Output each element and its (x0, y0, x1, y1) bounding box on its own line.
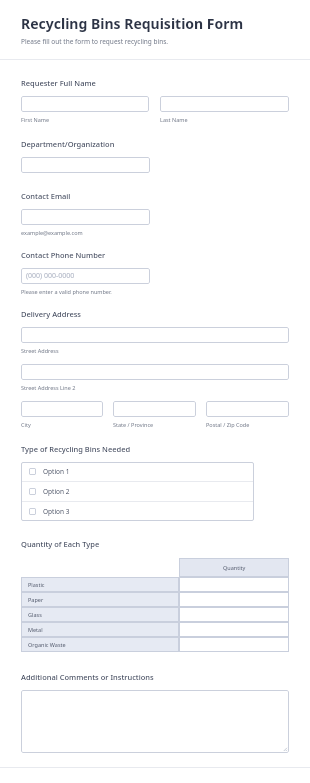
staticText: Plastic (28, 581, 45, 588)
staticText: Delivery Address (21, 309, 82, 319)
button[interactable] (21, 401, 103, 417)
staticText: City (21, 421, 31, 428)
staticText: Requester Full Name (21, 78, 96, 88)
staticText: Organic Waste (28, 641, 66, 648)
staticText: State / Province (113, 421, 154, 428)
staticText: Glass (28, 611, 42, 618)
staticText: Option 3 (43, 507, 70, 516)
button[interactable] (21, 690, 289, 753)
staticText: Type of Recycling Bins Needed (21, 444, 131, 454)
button[interactable] (21, 209, 150, 225)
button[interactable] (113, 401, 196, 417)
staticText: Recycling Bins Requisition Form (21, 14, 244, 33)
button[interactable]: Option 1 (21, 462, 254, 481)
staticText: Quantity of Each Type (21, 539, 100, 549)
staticText: Please fill out the form to request recy… (21, 37, 169, 46)
button[interactable] (179, 622, 289, 637)
staticText: Option 2 (43, 487, 70, 496)
button[interactable] (179, 592, 289, 607)
button[interactable] (21, 364, 289, 380)
staticText: Postal / Zip Code (206, 421, 250, 428)
staticText: Contact Phone Number (21, 250, 106, 260)
button[interactable]: Option 2 (21, 482, 254, 501)
staticText: Department/Organization (21, 139, 115, 149)
staticText: (000) 000-0000 (26, 271, 75, 281)
button[interactable] (179, 577, 289, 592)
button[interactable] (206, 401, 289, 417)
staticText: Metal (28, 626, 43, 633)
staticText: example@example.com (21, 229, 83, 236)
staticText: Paper (28, 596, 44, 603)
staticText: First Name (21, 116, 50, 123)
button[interactable] (21, 327, 289, 343)
button[interactable] (21, 96, 149, 112)
button[interactable] (21, 157, 150, 173)
button[interactable]: Option 3 (21, 502, 254, 521)
button[interactable]: (000) 000-0000 (21, 268, 150, 284)
staticText: Please enter a valid phone number. (21, 288, 112, 295)
staticText: Option 1 (43, 467, 70, 476)
staticText: Quantity (223, 564, 246, 571)
staticText: Additional Comments or Instructions (21, 672, 154, 682)
staticText: Last Name (160, 116, 188, 123)
staticText: Street Address Line 2 (21, 384, 76, 391)
staticText: Street Address (21, 347, 59, 354)
button[interactable] (160, 96, 289, 112)
button[interactable] (179, 637, 289, 652)
staticText: Contact Email (21, 191, 71, 201)
button[interactable] (179, 607, 289, 622)
